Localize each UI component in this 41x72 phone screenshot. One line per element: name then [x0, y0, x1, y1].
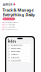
staticText: Private and secure — [4, 29, 18, 30]
button[interactable]: Get Started — [3, 18, 15, 20]
staticText: work, plans and habits. — [3, 14, 18, 16]
staticText: Get Started — [4, 18, 14, 20]
staticText: Read 20 pages — [10, 60, 21, 62]
staticText: Lumen — [3, 3, 13, 6]
staticText: Everything Daily — [3, 12, 35, 17]
staticText: Gym session — [10, 57, 19, 59]
staticText: Design review — [10, 47, 20, 49]
staticText: Morning standup — [10, 44, 22, 46]
staticText: One simple place for all your — [3, 13, 21, 15]
staticText: Release notes — [10, 51, 20, 52]
staticText: Works fully offline — [4, 26, 15, 28]
staticText: Shared team lists — [4, 24, 15, 26]
staticText: Today — [8, 40, 17, 43]
staticText: Smart daily reminders — [4, 22, 19, 23]
staticText: Team sync — [10, 54, 18, 55]
staticText: Track & Manage — [3, 7, 34, 13]
